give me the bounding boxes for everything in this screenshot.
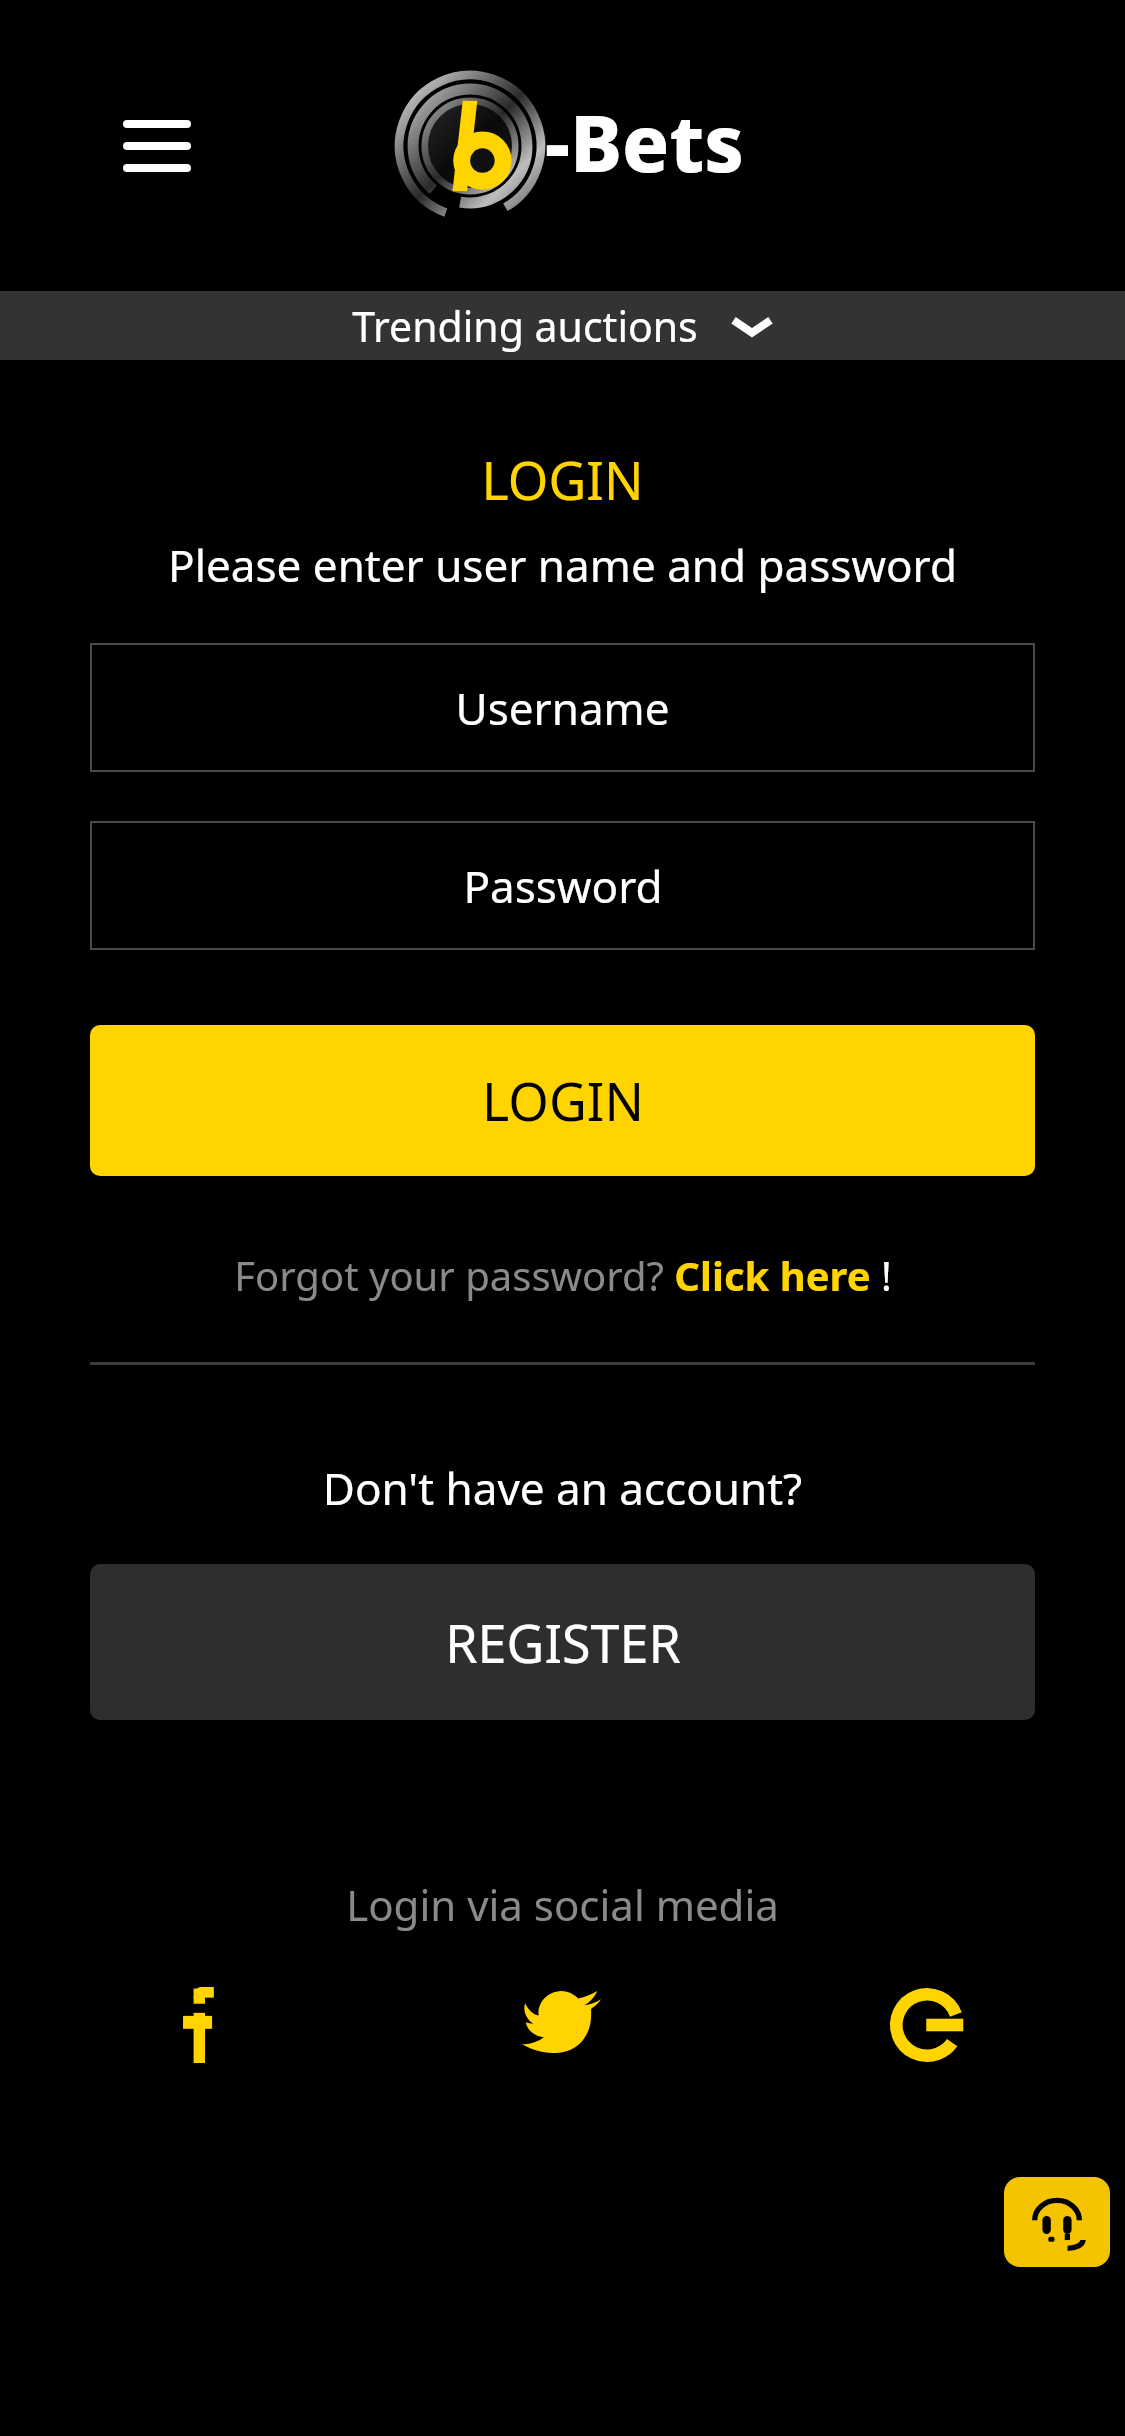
staticText: LOGIN	[0, 444, 1125, 515]
staticText: Password	[463, 856, 663, 916]
staticText: Don't have an account?	[0, 1458, 1125, 1518]
button[interactable]: Login with Twitter	[515, 1977, 611, 2073]
staticText: LOGIN	[482, 1065, 644, 1136]
button[interactable]: Username	[90, 643, 1035, 772]
staticText: REGISTER	[445, 1607, 681, 1678]
button[interactable]: Login with Google	[879, 1977, 975, 2073]
staticText: Login via social media	[0, 1876, 1125, 1933]
button[interactable]: Login with Facebook	[150, 1977, 246, 2073]
button[interactable]: Contact support	[1004, 2177, 1110, 2267]
button[interactable]: Forgot your password? Click here !	[0, 1248, 1125, 1302]
staticText: Username	[455, 678, 670, 738]
button[interactable]: Password	[90, 821, 1035, 950]
staticText: Forgot your password? Click here !	[234, 1248, 892, 1302]
staticText: Please enter user name and password	[0, 535, 1125, 595]
button[interactable]: REGISTER	[90, 1564, 1035, 1720]
button[interactable]: LOGIN	[90, 1025, 1035, 1176]
button[interactable]: Trending auctions	[0, 291, 1125, 360]
staticText: -Bets	[545, 89, 744, 195]
button[interactable]: Open navigation menu	[96, 96, 218, 196]
staticText: Trending auctions	[352, 298, 698, 354]
